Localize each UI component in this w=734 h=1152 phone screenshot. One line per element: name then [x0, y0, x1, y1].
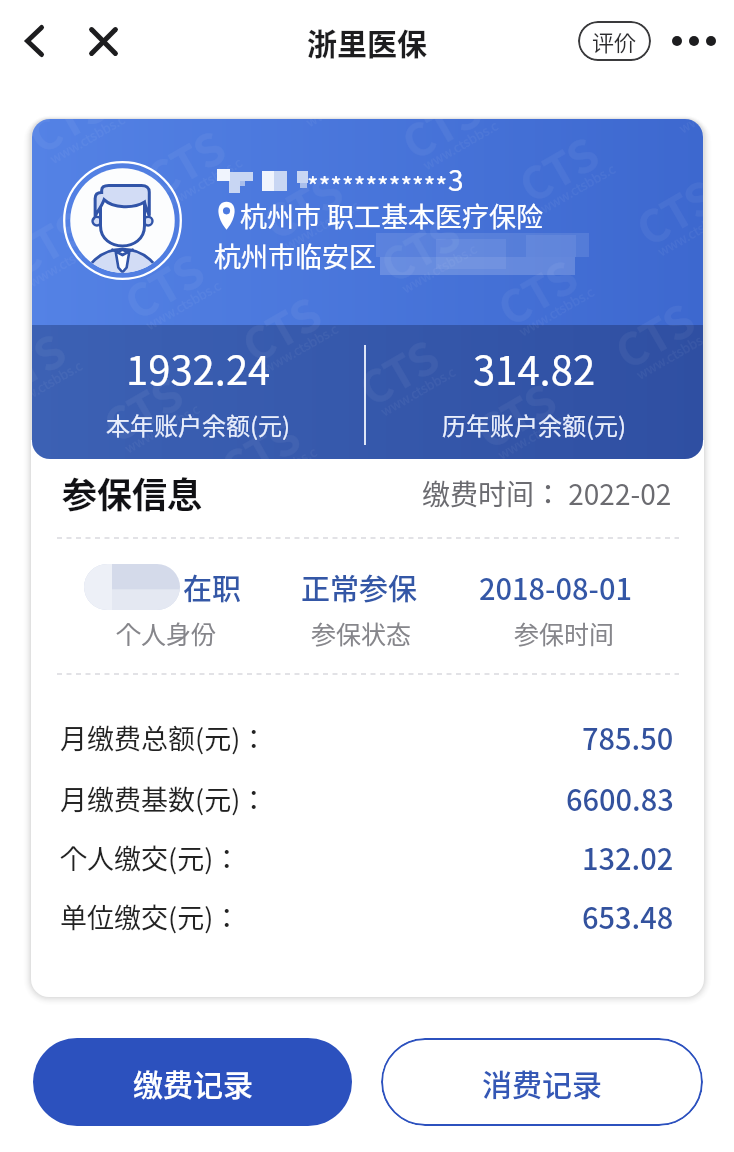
staticText: 参保信息 [62, 467, 203, 518]
button[interactable]: 月缴费总额(元)： [31, 707, 704, 767]
button[interactable]: Close [73, 11, 133, 71]
staticText: 浙里医保 [307, 20, 427, 63]
staticText: 个人缴交(元)： [60, 838, 241, 877]
button[interactable]: 参保信息 [31, 440, 704, 997]
staticText: 785.50 [582, 716, 674, 758]
staticText: 1932.24 [126, 339, 271, 397]
staticText: 杭州市 职工基本医疗保险 [240, 196, 544, 235]
staticText: 653.48 [582, 895, 674, 937]
staticText: 个人身份 [116, 615, 217, 651]
staticText: 缴费时间： 2022-02 [422, 473, 672, 514]
button[interactable]: 个人缴交(元)： [31, 827, 704, 887]
staticText: 6600.83 [566, 777, 674, 819]
staticText: 缴费记录 [133, 1061, 253, 1104]
staticText: 132.02 [582, 836, 674, 878]
button[interactable]: 月缴费基数(元)： [31, 768, 704, 828]
staticText: 消费记录 [482, 1061, 602, 1104]
staticText: 2018-08-01 [479, 566, 632, 608]
button[interactable]: 消费记录 [381, 1038, 703, 1126]
staticText: 参保状态 [311, 615, 412, 651]
staticText: 3 [448, 159, 464, 200]
button[interactable]: Back [4, 11, 64, 71]
staticText: 单位缴交(元)： [60, 897, 241, 936]
staticText: 在职 [183, 566, 242, 608]
staticText: 评价 [592, 25, 637, 57]
staticText: 历年账户余额(元) [442, 407, 627, 442]
staticText: 月缴费总额(元)： [60, 718, 268, 757]
staticText: 本年账户余额(元) [106, 407, 291, 442]
staticText: 月缴费基数(元)： [60, 779, 268, 818]
button[interactable]: 单位缴交(元)： [31, 886, 704, 946]
button[interactable]: 评价 [578, 21, 651, 61]
staticText: 314.82 [473, 339, 596, 397]
staticText: 杭州市临安区 [214, 236, 376, 275]
button[interactable]: More options [664, 11, 724, 71]
staticText: ************ [307, 167, 448, 203]
staticText: 参保时间 [514, 615, 615, 651]
button[interactable]: 缴费记录 [33, 1038, 352, 1126]
staticText: 正常参保 [301, 566, 418, 608]
button[interactable]: ************ [32, 119, 703, 459]
